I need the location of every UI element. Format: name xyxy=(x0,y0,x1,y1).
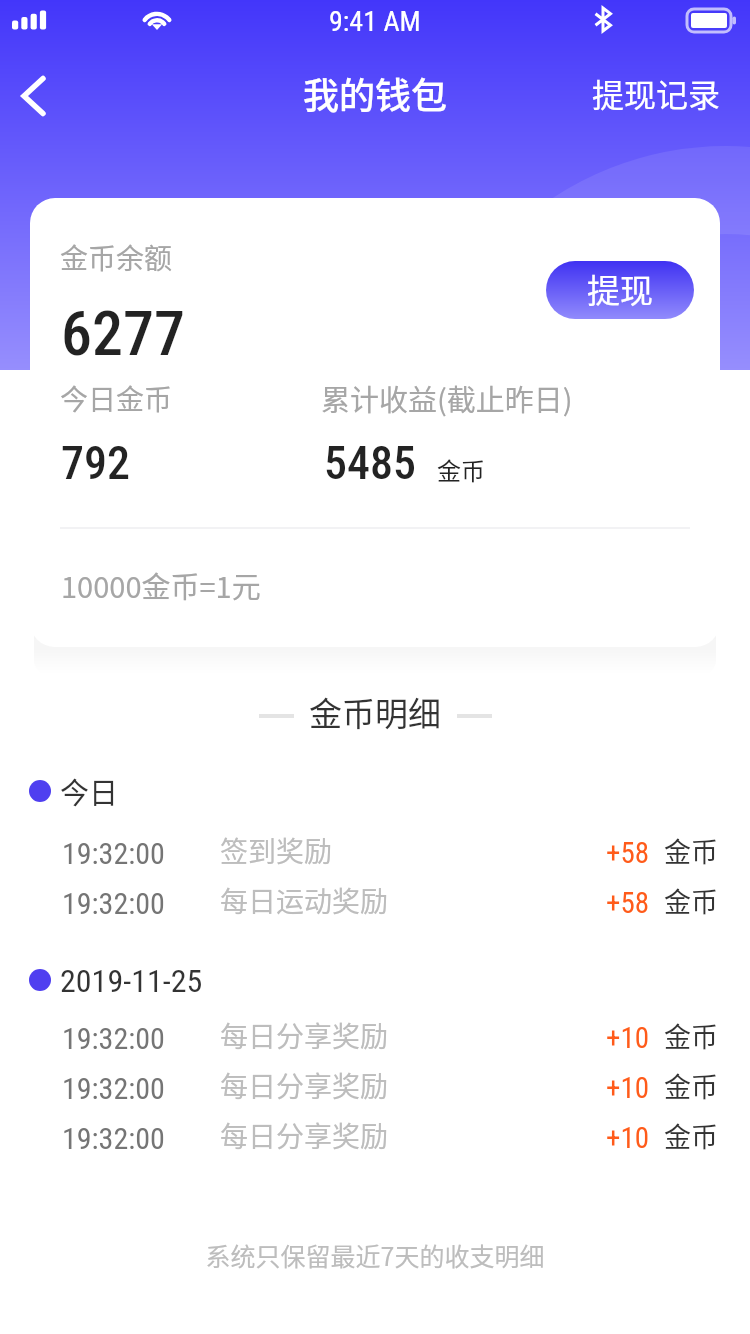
staticText: +10 xyxy=(606,1021,650,1055)
staticText: 签到奖励 xyxy=(220,830,333,871)
staticText: 提现记录 xyxy=(592,70,721,116)
button[interactable]: 19:32:00 xyxy=(0,1064,750,1114)
staticText: 金币 xyxy=(664,1016,718,1055)
staticText: +58 xyxy=(606,886,650,920)
staticText: 每日分享奖励 xyxy=(220,1065,389,1106)
staticText: 每日分享奖励 xyxy=(220,1115,389,1156)
staticText: 5485 xyxy=(324,436,416,490)
staticText: 每日运动奖励 xyxy=(220,880,389,921)
staticText: +10 xyxy=(606,1121,650,1155)
staticText: 10000金币=1元 xyxy=(61,564,261,606)
staticText: 19:32:00 xyxy=(62,886,165,921)
button[interactable]: Back xyxy=(0,52,88,140)
staticText: 792 xyxy=(61,436,130,490)
staticText: 金币 xyxy=(664,1116,718,1155)
button[interactable]: 提现 xyxy=(546,261,694,319)
staticText: 19:32:00 xyxy=(62,1121,165,1156)
staticText: 9:41 AM xyxy=(329,5,421,38)
staticText: 金币明细 xyxy=(309,688,441,736)
staticText: 每日分享奖励 xyxy=(220,1015,389,1056)
button[interactable]: 19:32:00 xyxy=(0,879,750,929)
button[interactable]: 提现记录 xyxy=(560,58,750,134)
button[interactable]: 19:32:00 xyxy=(0,829,750,879)
button[interactable]: 19:32:00 xyxy=(0,1014,750,1064)
staticText: 19:32:00 xyxy=(62,836,165,871)
staticText: 今日金币 xyxy=(60,378,173,419)
staticText: 我的钱包 xyxy=(303,67,448,119)
button[interactable]: 19:32:00 xyxy=(0,1114,750,1164)
staticText: 累计收益(截止昨日) xyxy=(321,377,573,419)
staticText: 今日 xyxy=(60,770,119,812)
staticText: 2019-11-25 xyxy=(60,962,203,1000)
staticText: +10 xyxy=(606,1071,650,1105)
staticText: 系统只保留最近7天的收支明细 xyxy=(0,1237,750,1273)
staticText: +58 xyxy=(606,836,650,870)
staticText: 提现 xyxy=(587,265,653,313)
staticText: 6277 xyxy=(61,297,185,370)
staticText: 金币 xyxy=(664,1066,718,1105)
staticText: 19:32:00 xyxy=(62,1071,165,1106)
staticText: 金币 xyxy=(664,881,718,920)
staticText: 金币 xyxy=(664,831,718,870)
staticText: 金币余额 xyxy=(60,237,173,278)
staticText: 金币 xyxy=(437,452,485,487)
staticText: 19:32:00 xyxy=(62,1021,165,1056)
